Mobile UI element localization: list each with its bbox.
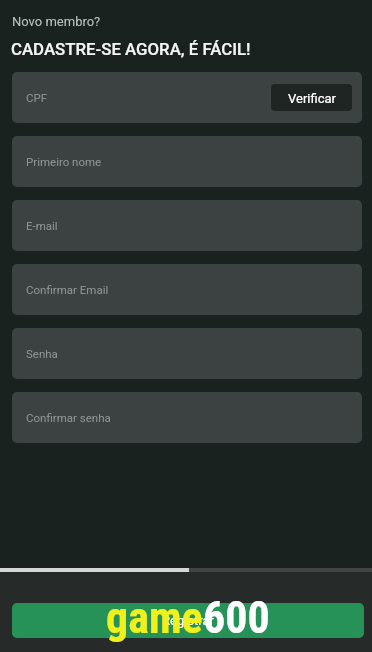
button[interactable]: Verificar	[271, 84, 352, 111]
button[interactable]: E-mail	[12, 200, 362, 251]
staticText: game	[106, 592, 203, 644]
button[interactable]: CPF	[12, 72, 362, 123]
button[interactable]: Registrar	[12, 603, 364, 638]
staticText: CPF	[26, 91, 48, 104]
staticText: E-mail	[26, 219, 58, 232]
other: game600 watermark	[106, 592, 270, 644]
staticText: Confirmar Email	[26, 283, 109, 296]
staticText: Registrar	[162, 613, 214, 628]
button[interactable]: Senha	[12, 328, 362, 379]
staticText: Primeiro nome	[26, 155, 102, 168]
staticText: Novo membro?	[12, 14, 101, 29]
staticText: Confirmar senha	[26, 411, 111, 424]
staticText: Senha	[26, 347, 58, 360]
button[interactable]: Confirmar Email	[12, 264, 362, 315]
staticText: CADASTRE-SE AGORA, É FÁCIL!	[11, 39, 251, 59]
button[interactable]: Confirmar senha	[12, 392, 362, 443]
staticText: Verificar	[288, 91, 336, 106]
button[interactable]: Primeiro nome	[12, 136, 362, 187]
staticText: 600	[203, 592, 270, 644]
